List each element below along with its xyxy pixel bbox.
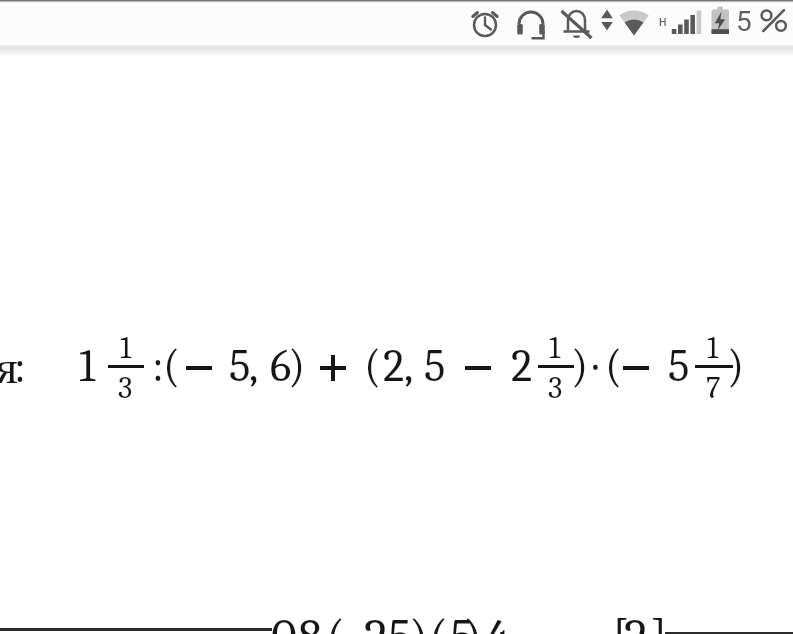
- staticText: 2: [364, 609, 388, 634]
- staticText: (: [429, 609, 449, 634]
- staticText: 1: [79, 340, 96, 392]
- staticText: 7: [706, 370, 721, 406]
- staticText: (: [605, 340, 623, 392]
- staticText: 5: [450, 609, 474, 634]
- staticText: ]: [650, 609, 668, 634]
- staticText: 5: [424, 340, 446, 392]
- staticText: (: [163, 340, 181, 392]
- button[interactable]: [0, 60, 793, 560]
- staticText: 6: [270, 340, 292, 392]
- staticText: 2: [383, 340, 405, 392]
- staticText: 1: [549, 330, 561, 366]
- staticText: ): [463, 609, 483, 634]
- staticText: 5: [736, 5, 752, 38]
- staticText: ,: [404, 340, 414, 392]
- staticText: ): [288, 340, 306, 392]
- staticText: 5: [388, 609, 412, 634]
- staticText: ): [571, 340, 589, 392]
- staticText: :: [14, 341, 26, 393]
- staticText: 5: [668, 340, 690, 392]
- staticText: ,: [249, 340, 259, 392]
- staticText: 1: [120, 330, 132, 366]
- staticText: :: [152, 340, 164, 392]
- staticText: 0: [271, 609, 297, 634]
- staticText: 1: [707, 330, 719, 366]
- staticText: [: [612, 609, 630, 634]
- staticText: 5: [229, 340, 251, 392]
- staticText: ): [409, 609, 429, 634]
- staticText: я: [0, 349, 19, 394]
- staticText: 2: [624, 609, 648, 634]
- staticText: (: [326, 609, 346, 634]
- staticText: 2: [511, 340, 533, 392]
- staticText: ): [727, 340, 745, 392]
- staticText: 4: [485, 609, 510, 634]
- staticText: (: [364, 340, 382, 392]
- staticText: 8: [298, 609, 323, 634]
- staticText: 3: [548, 370, 563, 406]
- staticText: H: [659, 16, 667, 28]
- staticText: ·: [593, 340, 598, 392]
- staticText: 3: [118, 370, 133, 406]
